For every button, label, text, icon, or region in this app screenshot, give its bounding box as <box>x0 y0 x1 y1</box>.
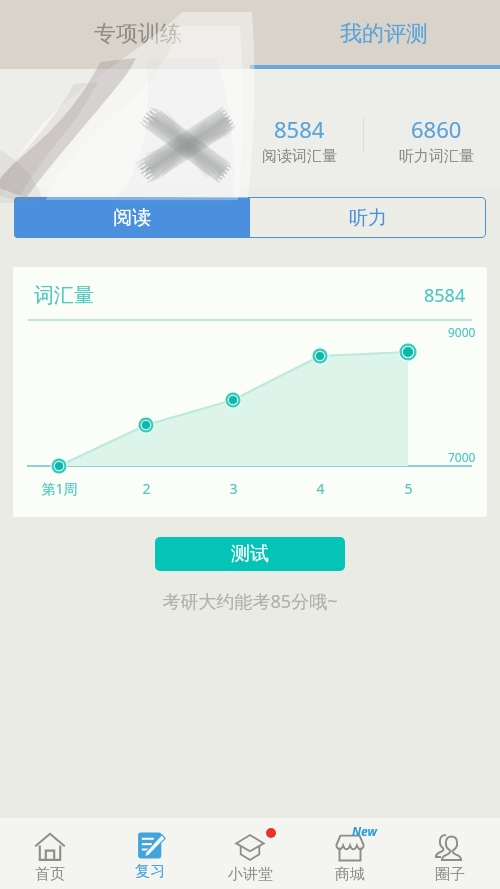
button[interactable]: 专项训练 <box>0 0 250 69</box>
button[interactable]: Shop <box>300 818 400 889</box>
staticText: 考研大约能考85分哦~ <box>0 589 500 614</box>
staticText: 6860 <box>411 114 462 144</box>
staticText: 圈子 <box>435 865 465 884</box>
staticText: 商城 <box>335 865 365 884</box>
button[interactable]: Home <box>0 818 100 889</box>
other: Shop <box>335 832 365 862</box>
staticText: 4 <box>316 479 325 498</box>
staticText: 7000 <box>448 449 476 465</box>
staticText: 首页 <box>35 865 65 884</box>
staticText: 词汇量 <box>34 283 94 308</box>
button[interactable]: Review <box>100 818 200 889</box>
staticText: 小讲堂 <box>228 865 273 884</box>
staticText: 专项训练 <box>94 20 182 48</box>
button[interactable]: Lessons <box>200 818 300 889</box>
staticText: 听力词汇量 <box>399 147 474 166</box>
staticText: 阅读 <box>113 206 151 230</box>
staticText: New <box>352 823 377 839</box>
staticText: 听力 <box>349 206 387 230</box>
staticText: 5 <box>404 479 413 498</box>
staticText: 我的评测 <box>340 20 428 48</box>
button[interactable]: 测试 <box>155 537 345 571</box>
staticText: 2 <box>142 479 151 498</box>
staticText: 8584 <box>274 114 325 144</box>
button[interactable]: 我的评测 <box>250 0 500 69</box>
staticText: 阅读词汇量 <box>262 147 337 166</box>
staticText: 第1周 <box>41 479 78 498</box>
button[interactable]: 阅读 <box>14 197 250 238</box>
staticText: 9000 <box>448 324 476 340</box>
other: Review <box>137 832 164 859</box>
other: Lessons <box>235 832 265 862</box>
staticText: 测试 <box>231 542 269 566</box>
button[interactable]: Community <box>400 818 500 889</box>
staticText: 8584 <box>424 283 466 308</box>
other: Home <box>35 832 65 862</box>
staticText: 3 <box>229 479 238 498</box>
button[interactable]: 听力 <box>250 197 486 238</box>
other: Community <box>435 832 465 862</box>
staticText: 复习 <box>135 862 165 881</box>
